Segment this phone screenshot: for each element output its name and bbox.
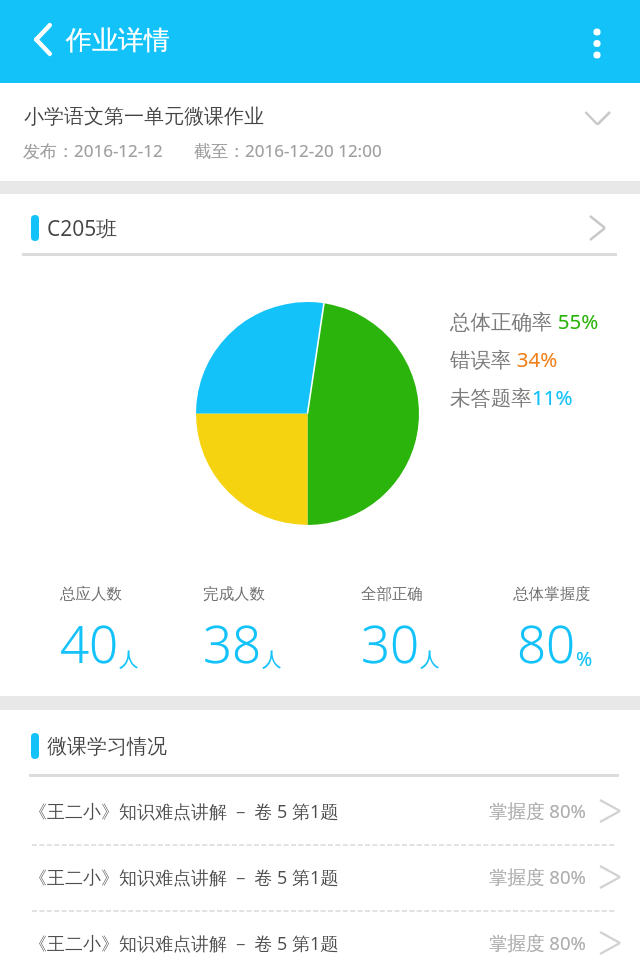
button[interactable]: C205班 [0,194,640,255]
staticText: 完成人数 [154,584,314,604]
staticText: 错误率 34% [450,345,558,373]
button[interactable]: 小学语文第一单元微课作业 [0,83,640,181]
staticText: 小学语文第一单元微课作业 [24,104,264,129]
staticText: 总应人数 [11,584,171,604]
staticText: C205班 [47,214,118,243]
staticText: 未答题率11% [450,383,573,411]
button[interactable]: 《王二小》知识难点讲解 － 卷 5 第1题 [0,846,640,910]
staticText: 30 [361,608,420,677]
staticText: 40 [60,608,119,677]
staticText: % [576,645,593,672]
button[interactable]: 《王二小》知识难点讲解 － 卷 5 第1题 [0,780,640,844]
staticText: 全部正确 [312,584,472,604]
staticText: 掌握度 80% [489,930,586,955]
staticText: 《王二小》知识难点讲解 － 卷 5 第1题 [29,931,339,956]
staticText: 《王二小》知识难点讲解 － 卷 5 第1题 [29,799,339,824]
staticText: 截至：2016-12-20 12:00 [194,139,382,162]
staticText: 发布：2016-12-12 [23,139,163,162]
staticText: 总体掌握度 [472,584,632,604]
staticText: 人 [262,647,282,672]
staticText: 掌握度 80% [489,864,586,889]
staticText: 作业详情 [66,24,170,57]
staticText: 人 [119,647,139,672]
staticText: 微课学习情况 [47,734,167,759]
staticText: 总体正确率 55% [450,307,599,335]
staticText: 38 [203,608,262,677]
staticText: 《王二小》知识难点讲解 － 卷 5 第1题 [29,865,339,890]
button[interactable]: 《王二小》知识难点讲解 － 卷 5 第1题 [0,912,640,960]
staticText: 掌握度 80% [489,798,586,823]
staticText: 80 [517,608,576,677]
staticText: 人 [420,647,440,672]
button[interactable]: More options [573,19,621,67]
button[interactable]: Back [18,16,66,64]
